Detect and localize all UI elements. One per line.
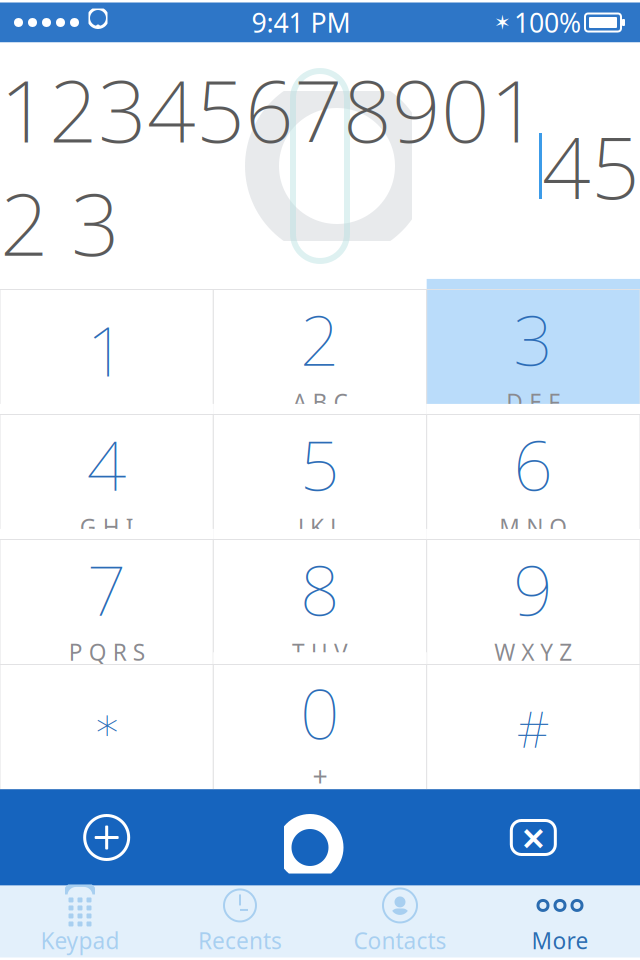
staticText: Recents	[198, 925, 282, 955]
button[interactable]: 5	[213, 414, 427, 539]
staticText: M N O	[499, 512, 567, 542]
staticText: 0	[300, 666, 340, 758]
staticText: W X Y Z	[494, 637, 572, 667]
staticText: 4	[87, 418, 127, 510]
button[interactable]: 8	[213, 539, 427, 664]
staticText: 45	[542, 109, 640, 223]
staticText: G H I	[80, 512, 134, 542]
button[interactable]: Call	[213, 789, 427, 885]
staticText: +	[312, 758, 327, 794]
button[interactable]: 4	[0, 414, 213, 539]
staticText: 5	[300, 418, 340, 510]
button[interactable]: #	[427, 664, 640, 789]
button[interactable]: 2	[213, 289, 427, 414]
staticText: Keypad	[40, 925, 119, 955]
staticText: 8	[300, 543, 340, 635]
staticText: 100%	[514, 5, 581, 40]
staticText: D E F	[506, 387, 560, 417]
staticText: ∗	[93, 698, 121, 750]
button[interactable]: 0	[213, 664, 427, 789]
staticText: 1	[87, 303, 127, 396]
button[interactable]: ∗	[0, 664, 213, 789]
staticText: P Q R S	[69, 637, 145, 667]
staticText: 6	[513, 418, 553, 510]
staticText: 9	[513, 543, 553, 635]
staticText: 2	[300, 293, 340, 385]
staticText: A B C	[292, 387, 347, 417]
staticText: More	[531, 925, 588, 955]
staticText: ×	[521, 809, 545, 866]
button[interactable]: Keypad	[0, 885, 160, 957]
staticText: ✶	[494, 11, 511, 34]
button[interactable]: Delete	[427, 789, 640, 885]
staticText: #	[517, 694, 550, 762]
button[interactable]: 6	[427, 414, 640, 539]
staticText: 3	[513, 293, 553, 385]
staticText: J K L	[298, 512, 342, 542]
staticText: 9:41 PM	[251, 5, 350, 40]
button[interactable]: 7	[0, 539, 213, 664]
staticText: 123456789012 3	[0, 53, 539, 279]
button[interactable]: 9	[427, 539, 640, 664]
staticText: Contacts	[353, 925, 446, 955]
button[interactable]: Recents	[160, 885, 320, 957]
staticText: T U V	[292, 637, 348, 667]
button[interactable]: 1	[0, 289, 213, 414]
button[interactable]: 3	[427, 289, 640, 414]
button[interactable]: Add Number	[0, 789, 213, 885]
button[interactable]: Contacts	[320, 885, 480, 957]
staticText: 7	[87, 543, 127, 635]
button[interactable]: More	[480, 885, 640, 957]
